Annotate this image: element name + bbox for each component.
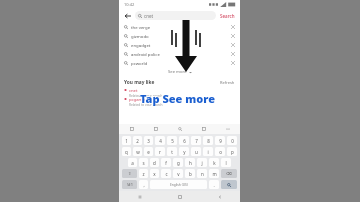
button[interactable]: m [209, 169, 219, 178]
staticText: 10:42 [124, 2, 135, 7]
staticText: q [125, 149, 128, 155]
staticText: 0 [231, 138, 234, 144]
button[interactable]: More [216, 124, 240, 134]
button[interactable]: 1 [122, 136, 131, 145]
staticText: Search [220, 13, 235, 19]
staticText: ⌫ [226, 171, 232, 176]
button[interactable]: Back [200, 191, 240, 202]
staticText: 1 [125, 138, 128, 144]
button[interactable]: k [209, 158, 219, 167]
button[interactable]: Backspace [221, 169, 237, 178]
button[interactable]: the verge [119, 22, 240, 31]
button[interactable]: j [197, 158, 207, 167]
button[interactable]: . [209, 180, 219, 189]
button[interactable]: 9 [215, 136, 225, 145]
button[interactable]: b [185, 169, 195, 178]
staticText: Related to your search [129, 103, 163, 106]
staticText: d [153, 160, 156, 166]
button[interactable]: 2 [133, 136, 142, 145]
staticText: pcworld [131, 60, 148, 66]
button[interactable]: Home [160, 191, 200, 202]
button[interactable]: Search [168, 124, 192, 134]
button[interactable]: 0 [227, 136, 237, 145]
button[interactable]: gizmodo [119, 31, 240, 40]
button[interactable]: y [179, 147, 189, 156]
staticText: k [213, 160, 216, 166]
button[interactable]: 8 [203, 136, 213, 145]
staticText: l [225, 160, 227, 166]
button[interactable]: g [173, 158, 183, 167]
button[interactable]: cnet [135, 11, 216, 20]
staticText: the verge [131, 24, 151, 30]
button[interactable]: p [227, 147, 237, 156]
staticText: b [189, 171, 192, 177]
staticText: gizmodo [131, 33, 149, 39]
staticText: 3 [147, 138, 150, 144]
staticText: You may like [124, 79, 155, 86]
button[interactable]: 6 [179, 136, 189, 145]
button[interactable]: s [139, 158, 148, 167]
staticText: pcgamer [129, 97, 147, 103]
button[interactable]: i [203, 147, 213, 156]
button[interactable]: Tabs [192, 124, 216, 134]
button[interactable]: 7 [191, 136, 201, 145]
button[interactable]: q [122, 147, 131, 156]
staticText: v [177, 171, 180, 177]
button[interactable]: Back [123, 11, 133, 21]
button[interactable]: u [191, 147, 201, 156]
button[interactable]: w [133, 147, 142, 156]
button[interactable]: Symbols [122, 180, 137, 189]
button[interactable]: English (US) [150, 180, 207, 189]
staticText: 4 [159, 138, 162, 144]
staticText: t [171, 149, 173, 155]
button[interactable]: e [144, 147, 153, 156]
button[interactable]: Shift [122, 169, 137, 178]
staticText: 2 [136, 138, 139, 144]
button[interactable]: t [167, 147, 177, 156]
button[interactable]: v [173, 169, 183, 178]
staticText: !#1 [127, 182, 133, 187]
button[interactable]: o [215, 147, 225, 156]
button[interactable]: Recents [119, 191, 160, 202]
staticText: e [147, 149, 150, 155]
button[interactable]: Search [219, 13, 236, 19]
button[interactable]: z [139, 169, 148, 178]
button[interactable]: pcgamer [119, 97, 240, 106]
button[interactable]: 4 [155, 136, 165, 145]
staticText: y [183, 149, 186, 155]
staticText: 7 [195, 138, 198, 144]
staticText: m [212, 171, 217, 177]
button[interactable]: Home [119, 124, 144, 134]
button[interactable]: h [185, 158, 195, 167]
staticText: android police [131, 51, 160, 57]
staticText: h [189, 160, 192, 166]
staticText: u [195, 149, 198, 155]
button[interactable]: d [150, 158, 159, 167]
staticText: engadget [131, 42, 151, 48]
button[interactable]: a [128, 158, 137, 167]
button[interactable]: r [155, 147, 165, 156]
button[interactable]: l [221, 158, 231, 167]
button[interactable]: See more [119, 67, 240, 76]
staticText: s [142, 160, 145, 166]
staticText: cnet [129, 88, 138, 94]
button[interactable]: Refresh [220, 80, 235, 85]
button[interactable]: c [161, 169, 171, 178]
staticText: cnet [144, 13, 154, 19]
button[interactable]: x [150, 169, 159, 178]
button[interactable]: android police [119, 49, 240, 58]
button[interactable]: , [139, 180, 148, 189]
staticText: English (US) [170, 183, 188, 187]
button[interactable]: Search [221, 180, 237, 189]
button[interactable]: pcworld [119, 58, 240, 67]
button[interactable]: 5 [167, 136, 177, 145]
staticText: , [143, 182, 145, 188]
button[interactable]: 3 [144, 136, 153, 145]
staticText: a [131, 160, 134, 166]
button[interactable]: Bookmarks [144, 124, 168, 134]
button[interactable]: cnet [119, 88, 240, 97]
button[interactable]: engadget [119, 40, 240, 49]
button[interactable]: f [161, 158, 171, 167]
button[interactable]: n [197, 169, 207, 178]
staticText: o [219, 149, 222, 155]
